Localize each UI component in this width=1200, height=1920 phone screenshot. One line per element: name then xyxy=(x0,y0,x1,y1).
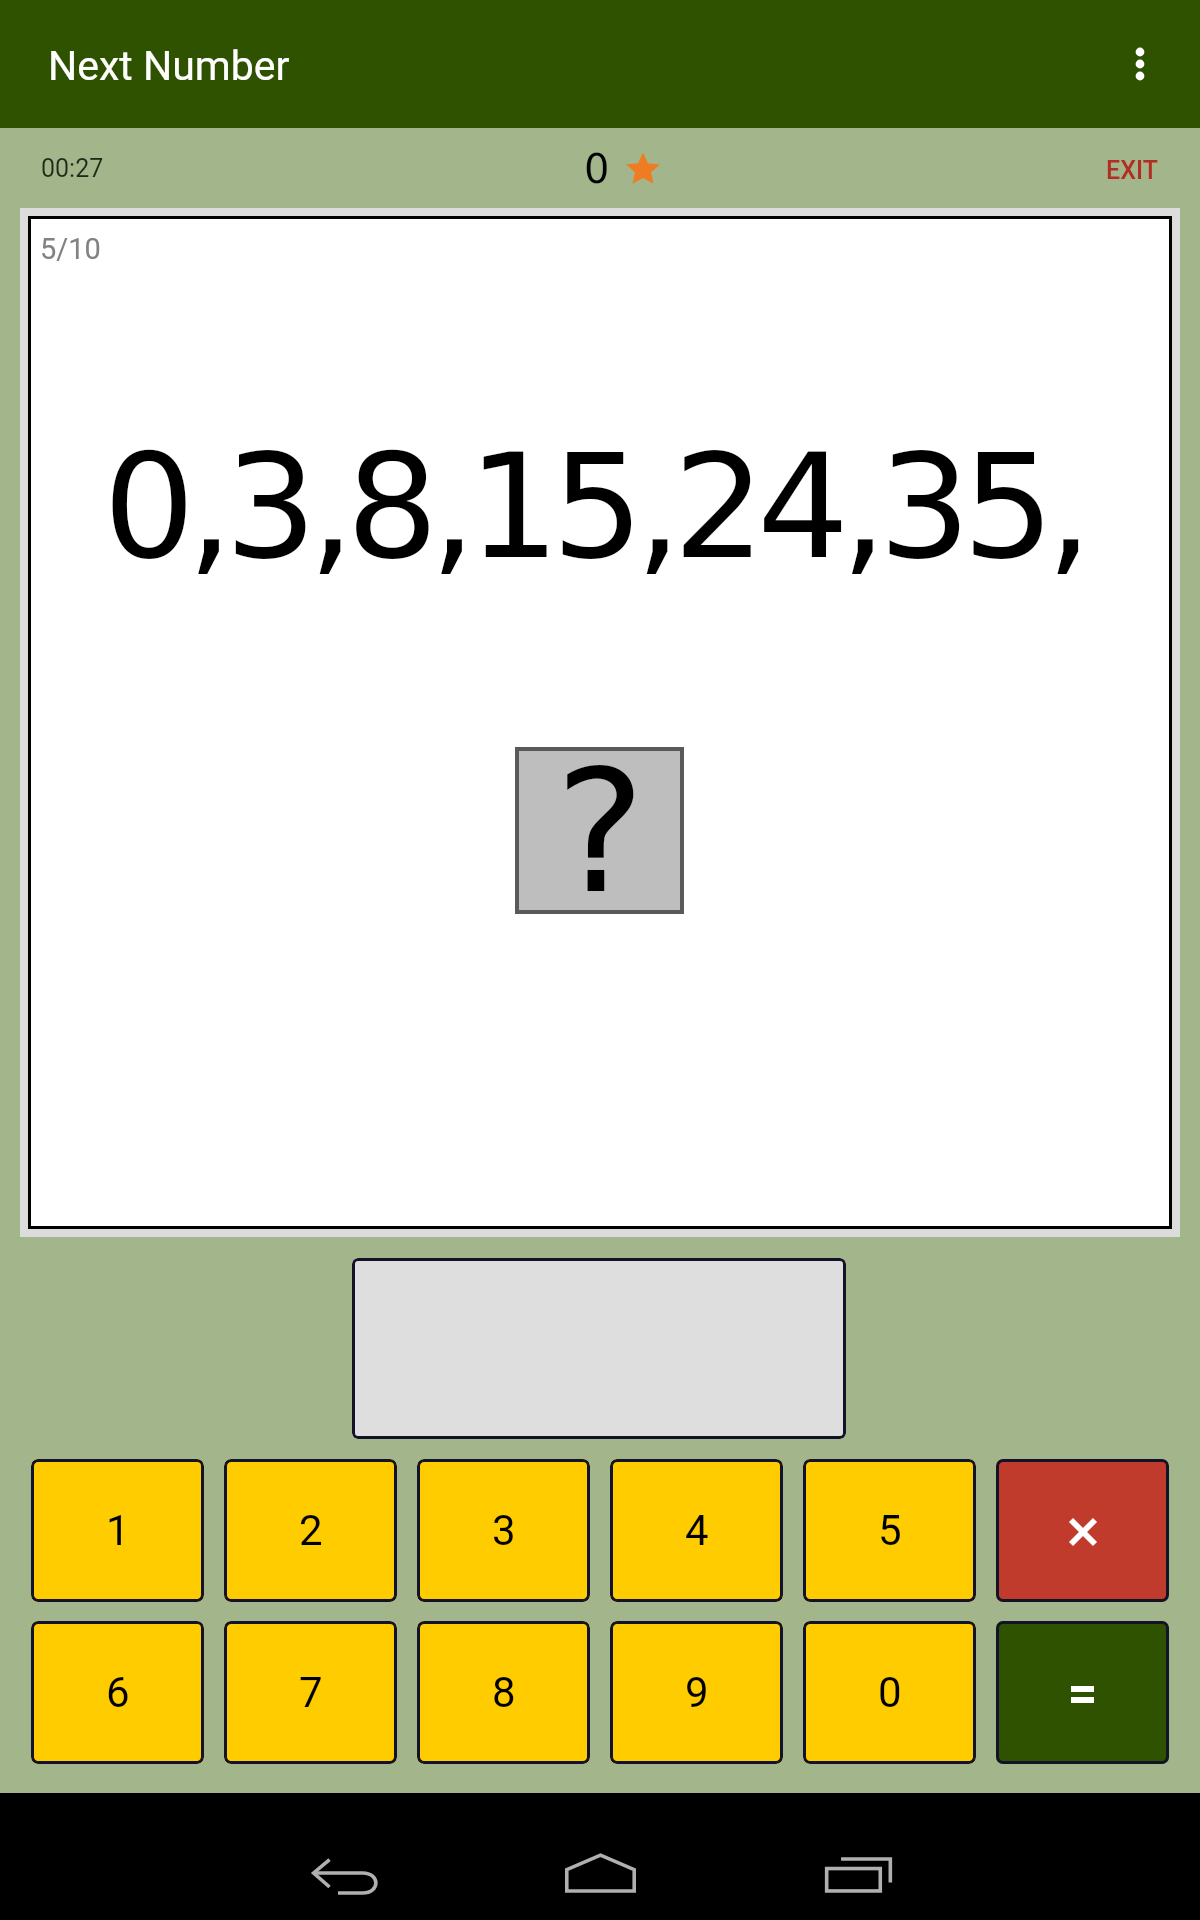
staticText: 5 xyxy=(878,1506,902,1555)
button[interactable]: Back xyxy=(284,1816,404,1920)
staticText: 3 xyxy=(492,1506,516,1555)
button[interactable] xyxy=(352,1258,846,1439)
other: Clear xyxy=(1071,1520,1095,1544)
staticText: 8 xyxy=(492,1668,516,1717)
staticText: 0 xyxy=(878,1668,902,1717)
staticText: EXIT xyxy=(1106,156,1158,185)
staticText: Next Number xyxy=(48,42,290,90)
staticText: 0,3,8,15,24,35, xyxy=(103,422,1084,591)
button[interactable]: Clear xyxy=(996,1459,1169,1602)
other: Enter xyxy=(1071,1686,1094,1703)
button[interactable]: Recent apps xyxy=(798,1814,918,1920)
staticText: ? xyxy=(555,733,646,892)
button[interactable]: Home xyxy=(540,1813,660,1920)
staticText: 6 xyxy=(106,1668,130,1717)
staticText: 7 xyxy=(299,1668,323,1717)
button[interactable]: 7 xyxy=(224,1621,397,1764)
staticText: 2 xyxy=(299,1506,323,1555)
staticText: 0 xyxy=(584,146,610,193)
button[interactable]: 9 xyxy=(610,1621,783,1764)
staticText: 4 xyxy=(685,1506,709,1555)
staticText: 9 xyxy=(685,1668,709,1717)
button[interactable]: 6 xyxy=(31,1621,204,1764)
button[interactable]: 5 xyxy=(803,1459,976,1602)
button[interactable]: 2 xyxy=(224,1459,397,1602)
staticText: 00:27 xyxy=(41,154,104,183)
staticText: 1 xyxy=(106,1506,130,1555)
button[interactable]: More options xyxy=(1104,28,1176,100)
button[interactable]: 4 xyxy=(610,1459,783,1602)
button[interactable]: EXIT xyxy=(1106,156,1158,185)
staticText: 5/10 xyxy=(40,232,101,266)
button[interactable]: 3 xyxy=(417,1459,590,1602)
button[interactable]: 0 xyxy=(803,1621,976,1764)
button[interactable]: 8 xyxy=(417,1621,590,1764)
button[interactable]: 1 xyxy=(31,1459,204,1602)
button[interactable]: Enter xyxy=(996,1621,1169,1764)
